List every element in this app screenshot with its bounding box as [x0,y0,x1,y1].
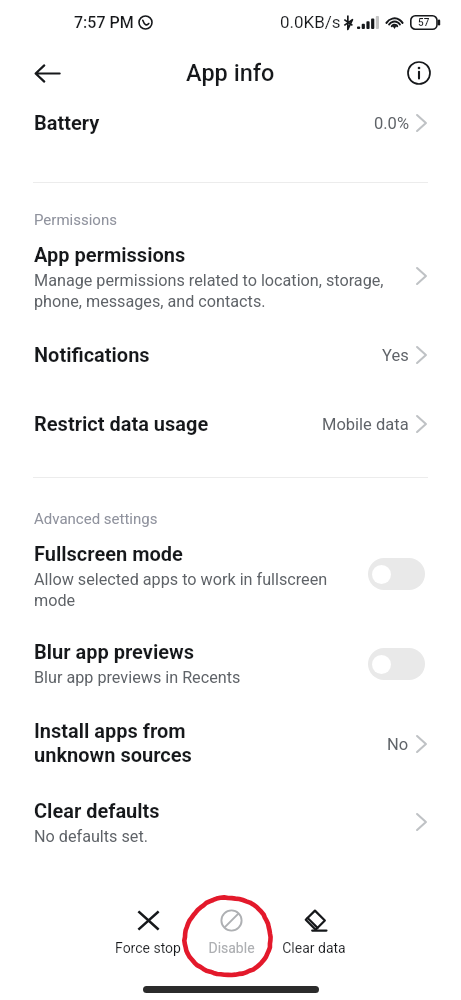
staticText: Blur app previews in Recents [34,668,241,687]
staticText: No defaults set. [34,827,148,846]
staticText: Permissions [34,211,117,229]
staticText: Force stop [115,940,181,956]
button[interactable]: Force stop [103,905,193,960]
staticText: Battery [34,111,100,134]
button[interactable]: Disable [186,905,276,960]
staticText: Fullscreen mode [34,542,183,565]
staticText: Clear defaults [34,799,160,822]
staticText: 7:57 PM [74,13,134,32]
staticText: Disable [208,940,255,956]
button[interactable]: Notifications [0,343,461,366]
button[interactable]: Install apps from unknown sources [0,719,461,767]
button[interactable]: Blur app previews [0,640,461,687]
button[interactable]: Battery [0,111,461,134]
button[interactable]: Fullscreen mode [0,542,461,610]
staticText: Notifications [34,343,150,366]
staticText: Restrict data usage [34,412,209,435]
button[interactable]: App permissions [0,243,461,311]
staticText: Manage permissions related to location, … [34,271,384,311]
staticText: 0.0KB/s [280,12,341,32]
staticText: Blur app previews [34,640,194,663]
staticText: App info [186,59,275,87]
button[interactable]: Back [27,53,67,93]
staticText: Clear data [282,940,346,956]
staticText: No [387,735,409,754]
staticText: Mobile data [322,415,409,434]
staticText: Advanced settings [34,510,158,528]
button[interactable]: Clear data [269,905,359,960]
staticText: 57 [418,17,430,29]
staticText: 0.0% [374,114,409,133]
staticText: Install apps from unknown sources [34,719,192,767]
button[interactable]: Toggle Fullscreen mode [368,558,425,590]
button[interactable]: Toggle Blur app previews [368,648,425,680]
button[interactable]: About app [399,53,439,93]
button[interactable]: Restrict data usage [0,412,461,435]
staticText: App permissions [34,243,186,266]
staticText: Allow selected apps to work in fullscree… [34,570,328,610]
staticText: Yes [382,346,409,365]
button[interactable]: Clear defaults [0,799,461,846]
